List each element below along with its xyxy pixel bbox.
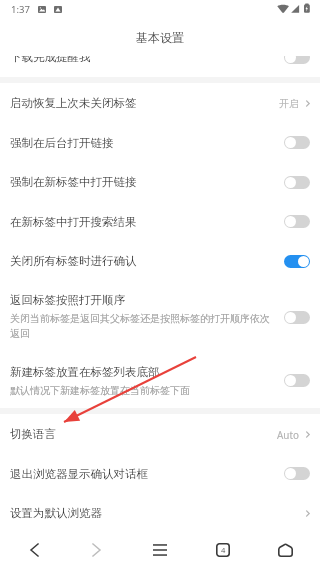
staticText: 强制在新标签中打开链接 bbox=[10, 175, 276, 189]
staticText: 启动恢复上次未关闭标签 bbox=[10, 96, 137, 110]
button[interactable]: Tabs bbox=[191, 532, 254, 567]
staticText: 开启 bbox=[279, 97, 299, 109]
button[interactable]: 关闭所有标签时进行确认 bbox=[0, 241, 320, 281]
button[interactable]: 启动恢复上次未关闭标签 bbox=[0, 83, 320, 123]
button[interactable]: Home bbox=[254, 532, 317, 567]
button[interactable]: Back bbox=[3, 532, 65, 567]
button[interactable]: Toggle off bbox=[284, 56, 310, 64]
button[interactable]: Toggle on bbox=[284, 255, 310, 268]
button[interactable]: 设置为默认浏览器 bbox=[0, 493, 320, 533]
staticText: 退出浏览器显示确认对话框 bbox=[10, 467, 276, 481]
button[interactable]: 退出浏览器显示确认对话框 bbox=[0, 454, 320, 493]
button[interactable]: Toggle off bbox=[284, 374, 310, 387]
button[interactable]: 新建标签放置在标签列表底部 bbox=[0, 353, 320, 408]
button[interactable]: Menu bbox=[128, 532, 191, 567]
button[interactable]: 在新标签中打开搜索结果 bbox=[0, 202, 320, 241]
staticText: 在新标签中打开搜索结果 bbox=[10, 215, 276, 229]
staticText: 返回标签按照打开顺序 bbox=[10, 293, 125, 307]
staticText: 关闭所有标签时进行确认 bbox=[10, 254, 276, 268]
staticText: 默认情况下新建标签放置在当前标签下面 bbox=[10, 383, 190, 398]
staticText: 基本设置 bbox=[136, 30, 184, 45]
staticText: 关闭当前标签是返回其父标签还是按照标签的打开顺序依次返回 bbox=[10, 311, 276, 341]
button[interactable]: Forward bbox=[65, 532, 128, 567]
button[interactable]: 强制在新标签中打开链接 bbox=[0, 162, 320, 202]
button[interactable]: Toggle off bbox=[284, 176, 310, 189]
staticText: 1:37 bbox=[11, 3, 30, 16]
button[interactable]: 强制在后台打开链接 bbox=[0, 123, 320, 162]
staticText: 4 bbox=[221, 545, 226, 555]
staticText: 新建标签放置在标签列表底部 bbox=[10, 365, 160, 379]
button[interactable]: 返回标签按照打开顺序 bbox=[0, 281, 320, 353]
button[interactable]: 切换语言 bbox=[0, 414, 320, 454]
staticText: 强制在后台打开链接 bbox=[10, 136, 276, 150]
staticText: 切换语言 bbox=[10, 427, 56, 441]
button[interactable]: 下载完成提醒我 bbox=[0, 56, 320, 77]
staticText: Auto bbox=[277, 428, 299, 441]
button[interactable]: Toggle off bbox=[284, 215, 310, 228]
button[interactable]: Toggle off bbox=[284, 311, 310, 324]
staticText: 设置为默认浏览器 bbox=[10, 506, 102, 520]
button[interactable]: Toggle off bbox=[284, 467, 310, 480]
staticText: 下载完成提醒我 bbox=[10, 56, 276, 64]
button[interactable]: Toggle off bbox=[284, 136, 310, 149]
